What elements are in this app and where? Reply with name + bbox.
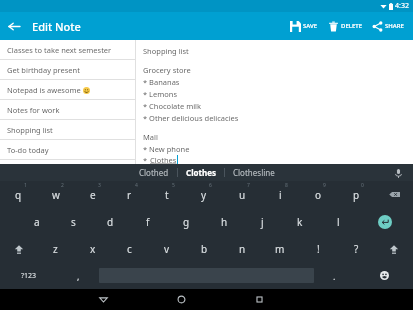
staticText: 5: [172, 182, 175, 189]
button[interactable]: Enter: [357, 208, 413, 235]
staticText: f: [146, 215, 150, 229]
staticText: 6: [209, 182, 212, 189]
staticText: i: [279, 188, 282, 202]
button[interactable]: Notes for work: [0, 100, 135, 119]
button[interactable]: Notepad is awesome: [0, 80, 135, 99]
button[interactable]: s: [55, 208, 92, 235]
staticText: .: [333, 270, 336, 282]
staticText: 2: [61, 182, 64, 189]
staticText: e: [90, 188, 96, 202]
button[interactable]: Recents: [243, 289, 275, 310]
staticText: b: [201, 242, 208, 256]
button[interactable]: 1: [0, 181, 37, 208]
button[interactable]: Shopping list: [0, 120, 135, 139]
staticText: Grocery store: [143, 65, 191, 75]
staticText: z: [53, 242, 58, 256]
staticText: 7: [247, 182, 250, 189]
button[interactable]: 8: [261, 181, 299, 208]
button[interactable]: !: [299, 235, 337, 262]
staticText: 3: [98, 182, 101, 189]
staticText: r: [127, 188, 132, 202]
staticText: g: [183, 215, 190, 229]
button[interactable]: n: [223, 235, 261, 262]
staticText: 4: [135, 182, 138, 189]
staticText: 1: [24, 182, 27, 189]
button[interactable]: 2: [37, 181, 74, 208]
staticText: To-do today: [7, 145, 49, 155]
button[interactable]: 4: [111, 181, 148, 208]
button[interactable]: 3: [74, 181, 111, 208]
button[interactable]: SHARE: [367, 12, 409, 40]
button[interactable]: To-do today: [0, 140, 135, 159]
button[interactable]: Classes to take next semester: [0, 40, 135, 59]
staticText: 4:32: [395, 1, 409, 11]
staticText: Clothes: [150, 155, 177, 164]
button[interactable]: Back: [0, 12, 28, 40]
staticText: v: [164, 242, 170, 256]
staticText: !: [317, 242, 320, 256]
staticText: m: [275, 242, 285, 256]
button[interactable]: c: [111, 235, 148, 262]
staticText: t: [165, 188, 169, 202]
button[interactable]: ?: [337, 235, 375, 262]
button[interactable]: 0: [337, 181, 375, 208]
staticText: Classes to take next semester: [7, 45, 112, 55]
button[interactable]: b: [185, 235, 223, 262]
staticText: Clothesline: [233, 167, 275, 178]
button[interactable]: Clothed: [131, 167, 177, 178]
button[interactable]: 7: [223, 181, 261, 208]
staticText: u: [239, 188, 246, 202]
button[interactable]: Shift: [0, 235, 37, 262]
button[interactable]: DELETE: [323, 12, 367, 40]
button[interactable]: Home: [165, 289, 197, 310]
staticText: s: [71, 215, 76, 229]
button[interactable]: SAVE: [285, 12, 323, 40]
staticText: x: [90, 242, 96, 256]
button[interactable]: 9: [299, 181, 337, 208]
button[interactable]: Get birthday present: [0, 60, 135, 79]
staticText: Notes for work: [7, 105, 60, 115]
button[interactable]: m: [261, 235, 299, 262]
staticText: Shopping list: [143, 46, 189, 56]
button[interactable]: x: [74, 235, 111, 262]
staticText: Shopping list: [7, 125, 53, 135]
button[interactable]: 6: [185, 181, 223, 208]
staticText: ?123: [21, 271, 37, 281]
button[interactable]: h: [205, 208, 243, 235]
button[interactable]: Shift: [375, 235, 413, 262]
button[interactable]: ,: [58, 262, 99, 289]
staticText: DELETE: [341, 22, 362, 30]
button[interactable]: 5: [148, 181, 185, 208]
staticText: * Bananas: [143, 77, 180, 87]
button[interactable]: l: [319, 208, 357, 235]
button[interactable]: a: [18, 208, 55, 235]
button[interactable]: j: [243, 208, 281, 235]
button[interactable]: g: [167, 208, 205, 235]
button[interactable]: Emoji: [355, 262, 413, 289]
button[interactable]: Back: [87, 289, 119, 310]
staticText: 9: [323, 182, 326, 189]
button[interactable]: Backspace: [375, 181, 413, 208]
button[interactable]: .: [314, 262, 355, 289]
button[interactable]: k: [281, 208, 319, 235]
staticText: SHARE: [385, 22, 404, 30]
staticText: * Lemons: [143, 89, 178, 99]
button[interactable]: d: [92, 208, 129, 235]
button[interactable]: v: [148, 235, 185, 262]
staticText: *: [143, 155, 150, 164]
staticText: c: [127, 242, 132, 256]
button[interactable]: ?123: [0, 262, 58, 289]
button[interactable]: z: [37, 235, 74, 262]
staticText: y: [201, 188, 207, 202]
button[interactable]: Clothesline: [225, 167, 283, 178]
button[interactable]: Clothes: [178, 167, 224, 178]
staticText: * New phone: [143, 144, 190, 154]
staticText: 8: [285, 182, 288, 189]
button[interactable]: f: [129, 208, 167, 235]
staticText: q: [15, 188, 22, 202]
staticText: 0: [361, 182, 364, 189]
staticText: n: [239, 242, 246, 256]
staticText: ,: [77, 270, 80, 282]
button[interactable]: Voice input: [391, 166, 405, 180]
